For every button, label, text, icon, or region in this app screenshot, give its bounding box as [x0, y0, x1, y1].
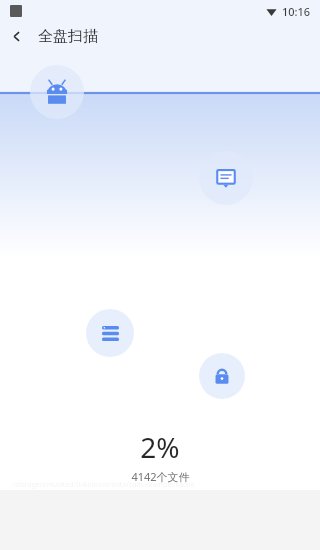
staticText: /storage/emulated/0/Android/data/com.exa… — [12, 480, 195, 490]
button[interactable]: Android apps — [30, 65, 84, 119]
button[interactable]: Back — [0, 22, 34, 50]
button[interactable]: Files list — [86, 309, 134, 357]
staticText: 全盘扫描 — [38, 27, 98, 46]
button[interactable]: Messages — [199, 151, 253, 205]
staticText: 4142个文件 — [131, 469, 190, 484]
button[interactable]: Privacy lock — [199, 353, 245, 399]
staticText: 10:16 — [282, 4, 311, 19]
staticText: 2% — [140, 428, 180, 466]
